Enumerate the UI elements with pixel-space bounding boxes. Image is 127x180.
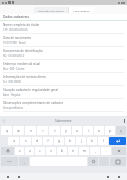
staticText: Endereço residencial atual xyxy=(3,62,40,66)
button[interactable]: h xyxy=(65,137,75,145)
button[interactable]: y xyxy=(61,126,71,135)
button[interactable]: Documento de identificação xyxy=(0,47,127,60)
staticText: Documento de identificação xyxy=(3,49,43,53)
button[interactable]: x xyxy=(25,147,34,155)
staticText: Situação cadastral e regularidade geral xyxy=(3,88,58,92)
staticText: v xyxy=(50,149,52,153)
staticText: f xyxy=(47,139,49,143)
staticText: h xyxy=(69,139,71,143)
button[interactable]: z xyxy=(15,147,24,155)
button[interactable]: o xyxy=(94,126,104,135)
staticText: y xyxy=(65,129,67,133)
staticText: l xyxy=(103,139,104,143)
button[interactable]: Nome completo do titular xyxy=(0,21,127,34)
button[interactable]: Enter xyxy=(109,137,126,145)
staticText: t xyxy=(54,129,56,133)
button[interactable]: n xyxy=(68,147,78,155)
staticText: Sem pendências xyxy=(3,106,23,110)
staticText: e xyxy=(30,129,32,133)
staticText: u xyxy=(76,129,78,133)
staticText: m xyxy=(83,149,86,153)
button[interactable]: b xyxy=(57,147,67,155)
button[interactable]: i xyxy=(83,126,93,135)
button[interactable]: Shift xyxy=(1,147,14,155)
staticText: Ativo · Regular xyxy=(3,93,21,97)
button[interactable]: Informações de contato direto xyxy=(0,73,127,86)
button[interactable]: l xyxy=(98,137,108,145)
staticText: Sobrenome xyxy=(55,119,72,123)
button[interactable]: Keyboard options xyxy=(110,157,126,166)
staticText: Observações complementares do cadastro xyxy=(3,101,64,105)
staticText: i xyxy=(88,129,89,133)
staticText: q xyxy=(6,129,8,133)
button[interactable]: u xyxy=(72,126,82,135)
staticText: , xyxy=(24,160,25,164)
staticText: x xyxy=(29,149,31,153)
staticText: RG · 00.000.000-0 xyxy=(3,54,25,58)
staticText: , xyxy=(95,149,96,153)
staticText: Nome completo do titular xyxy=(3,23,40,27)
staticText: Dados cadastrais xyxy=(3,15,29,19)
button[interactable]: m xyxy=(79,147,89,155)
button[interactable]: g xyxy=(54,137,64,145)
button[interactable]: Backspace xyxy=(112,147,126,155)
staticText: ç xyxy=(120,129,122,133)
button[interactable]: ç xyxy=(116,126,126,135)
staticText: . xyxy=(106,149,107,153)
staticText: j xyxy=(81,139,82,143)
staticText: Informações de contato direto xyxy=(3,75,46,79)
button[interactable]: s xyxy=(20,137,31,145)
button[interactable]: Voice input xyxy=(2,119,6,123)
staticText: Tel · (00) 00000 xyxy=(3,80,22,84)
button[interactable]: v xyxy=(46,147,56,155)
staticText: Lista cadastro xyxy=(73,9,90,12)
button[interactable]: k xyxy=(87,137,97,145)
staticText: b xyxy=(61,149,63,153)
button[interactable]: t xyxy=(49,126,60,135)
button[interactable]: c xyxy=(35,147,45,155)
button[interactable]: Data de nascimento xyxy=(0,34,127,47)
button[interactable]: , xyxy=(90,147,100,155)
button[interactable]: Lista cadastro xyxy=(69,7,94,13)
button[interactable]: Symbols xyxy=(1,157,18,166)
button[interactable]: p xyxy=(105,126,115,135)
staticText: w xyxy=(17,129,20,133)
staticText: d xyxy=(36,139,38,143)
staticText: n xyxy=(72,149,74,153)
button[interactable]: d xyxy=(32,137,42,145)
staticText: . xyxy=(104,160,105,164)
button[interactable]: Endereço residencial atual xyxy=(0,60,127,73)
button[interactable]: a xyxy=(8,137,19,145)
staticText: p xyxy=(109,129,111,133)
staticText: 01/01/1980 · Brasil xyxy=(3,41,26,45)
staticText: g xyxy=(58,139,60,143)
button[interactable]: f xyxy=(43,137,53,145)
button[interactable]: Descrição das autoria xyxy=(34,7,68,13)
staticText: Descrição das autoria xyxy=(38,9,64,12)
button[interactable]: q xyxy=(1,126,12,135)
button[interactable]: Observações complementares do cadastro xyxy=(0,99,127,112)
staticText: Data de nascimento xyxy=(3,36,32,40)
button[interactable]: Emoji xyxy=(88,157,98,166)
staticText: c xyxy=(39,149,41,153)
button[interactable]: e xyxy=(25,126,36,135)
staticText: k xyxy=(91,139,93,143)
button[interactable]: Sobrenome xyxy=(51,118,76,124)
button[interactable]: w xyxy=(13,126,24,135)
staticText: a xyxy=(13,139,15,143)
staticText: CPF: 000.000.000-00 xyxy=(3,28,28,32)
button[interactable]: r xyxy=(37,126,48,135)
button[interactable]: j xyxy=(76,137,86,145)
button[interactable]: Situação cadastral e regularidade geral xyxy=(0,86,127,99)
staticText: r xyxy=(42,129,44,133)
staticText: Rua · 000 · Centro xyxy=(3,67,25,71)
